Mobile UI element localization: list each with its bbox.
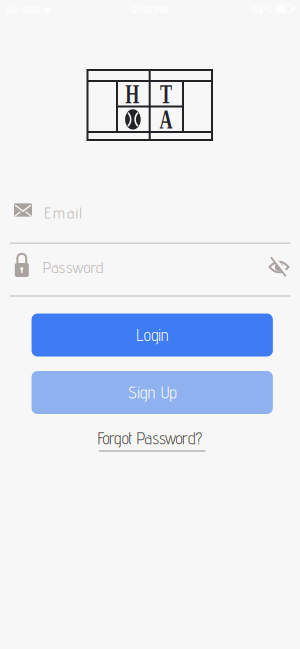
staticText: T xyxy=(157,79,175,109)
staticText: H xyxy=(122,79,143,109)
staticText: Password xyxy=(43,258,103,277)
staticText: Sign Up xyxy=(128,383,176,402)
staticText: A xyxy=(156,104,176,134)
staticText: Forgot Password? xyxy=(98,428,203,448)
button[interactable]: Sign Up xyxy=(31,371,273,414)
staticText: Login xyxy=(136,325,168,345)
button[interactable]: Show password xyxy=(267,254,291,278)
staticText: Email xyxy=(44,203,82,222)
button[interactable]: Login xyxy=(31,313,273,356)
button[interactable]: Forgot Password? xyxy=(99,428,205,452)
